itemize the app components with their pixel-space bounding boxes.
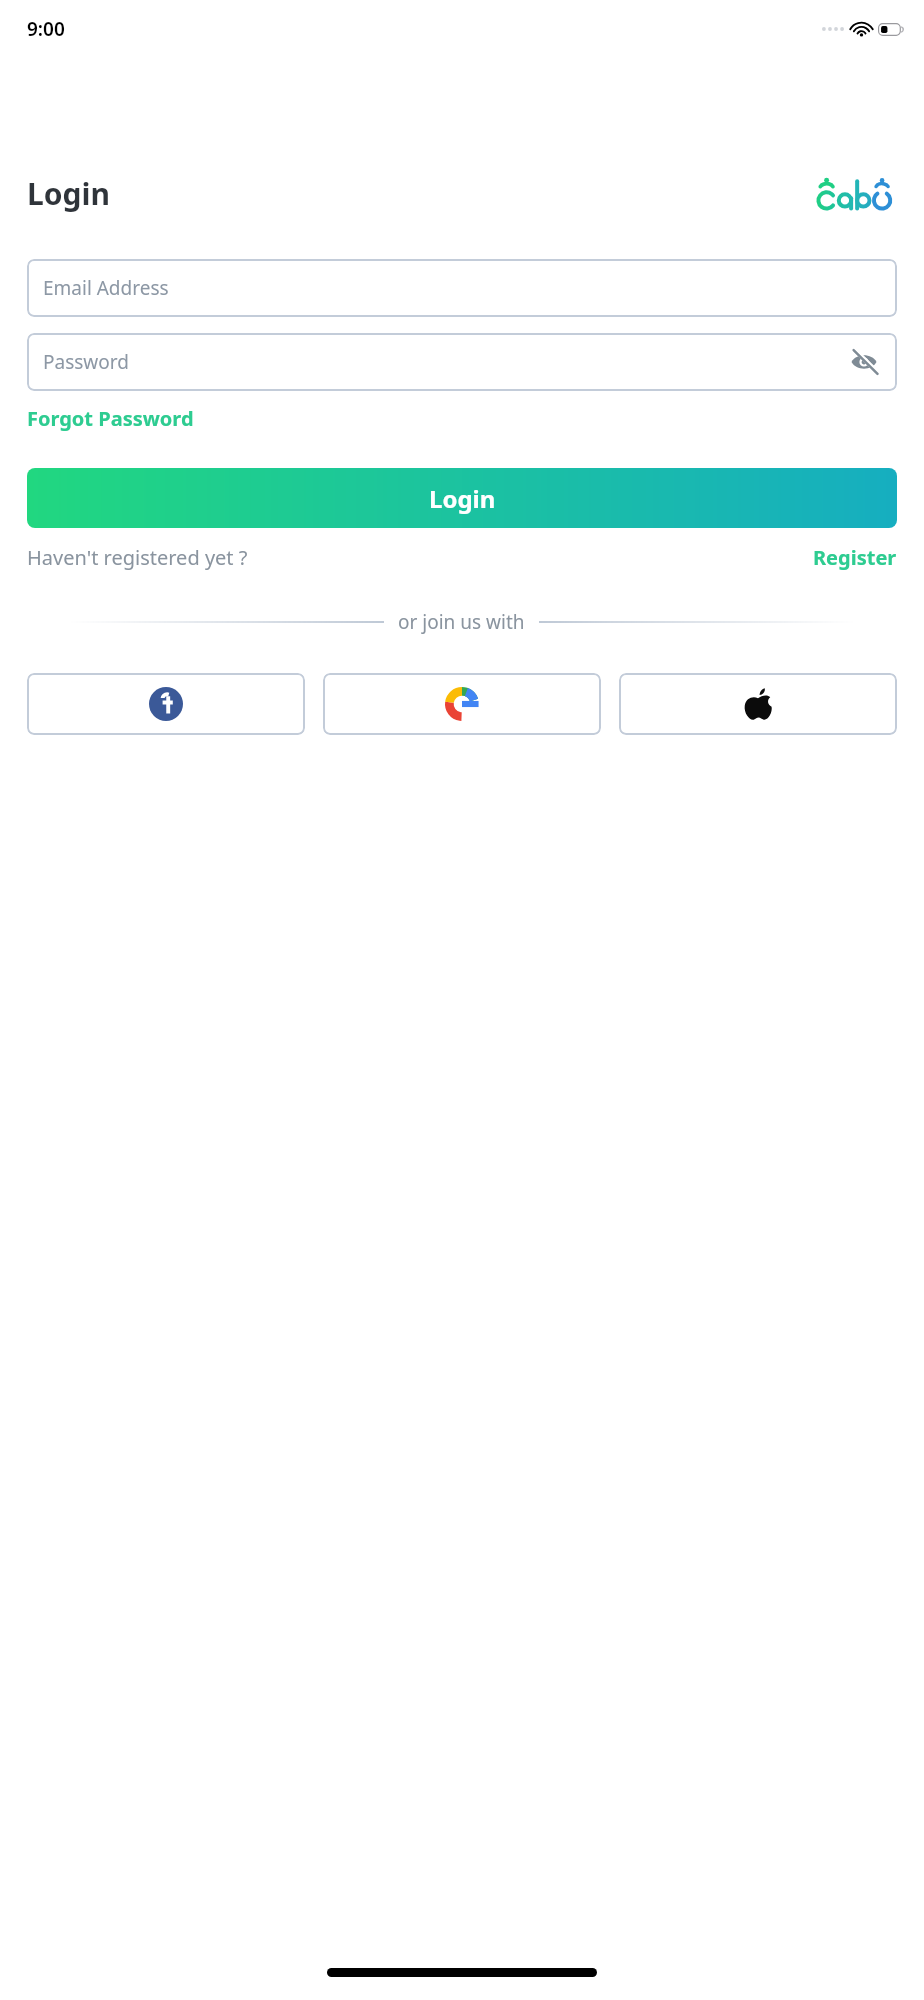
button[interactable]: Register: [813, 544, 897, 571]
button[interactable]: Sign in with Google: [323, 673, 601, 735]
button[interactable]: Forgot Password: [27, 405, 194, 432]
button[interactable]: Login: [27, 468, 897, 528]
staticText: Register: [813, 544, 897, 571]
button[interactable]: Sign in with Apple: [619, 673, 897, 735]
staticText: Login: [27, 173, 110, 214]
staticText: Login: [429, 482, 496, 515]
button[interactable]: Sign in with Facebook: [27, 673, 305, 735]
staticText: Forgot Password: [27, 405, 194, 432]
staticText: or join us with: [398, 609, 525, 635]
staticText: Haven't registered yet ?: [27, 544, 248, 571]
staticText: Password: [43, 349, 129, 375]
staticText: 9:00: [27, 16, 65, 42]
button[interactable]: Email Address: [27, 259, 897, 317]
staticText: Email Address: [43, 275, 169, 301]
button[interactable]: Show password: [847, 345, 881, 379]
button[interactable]: Password: [27, 333, 897, 391]
